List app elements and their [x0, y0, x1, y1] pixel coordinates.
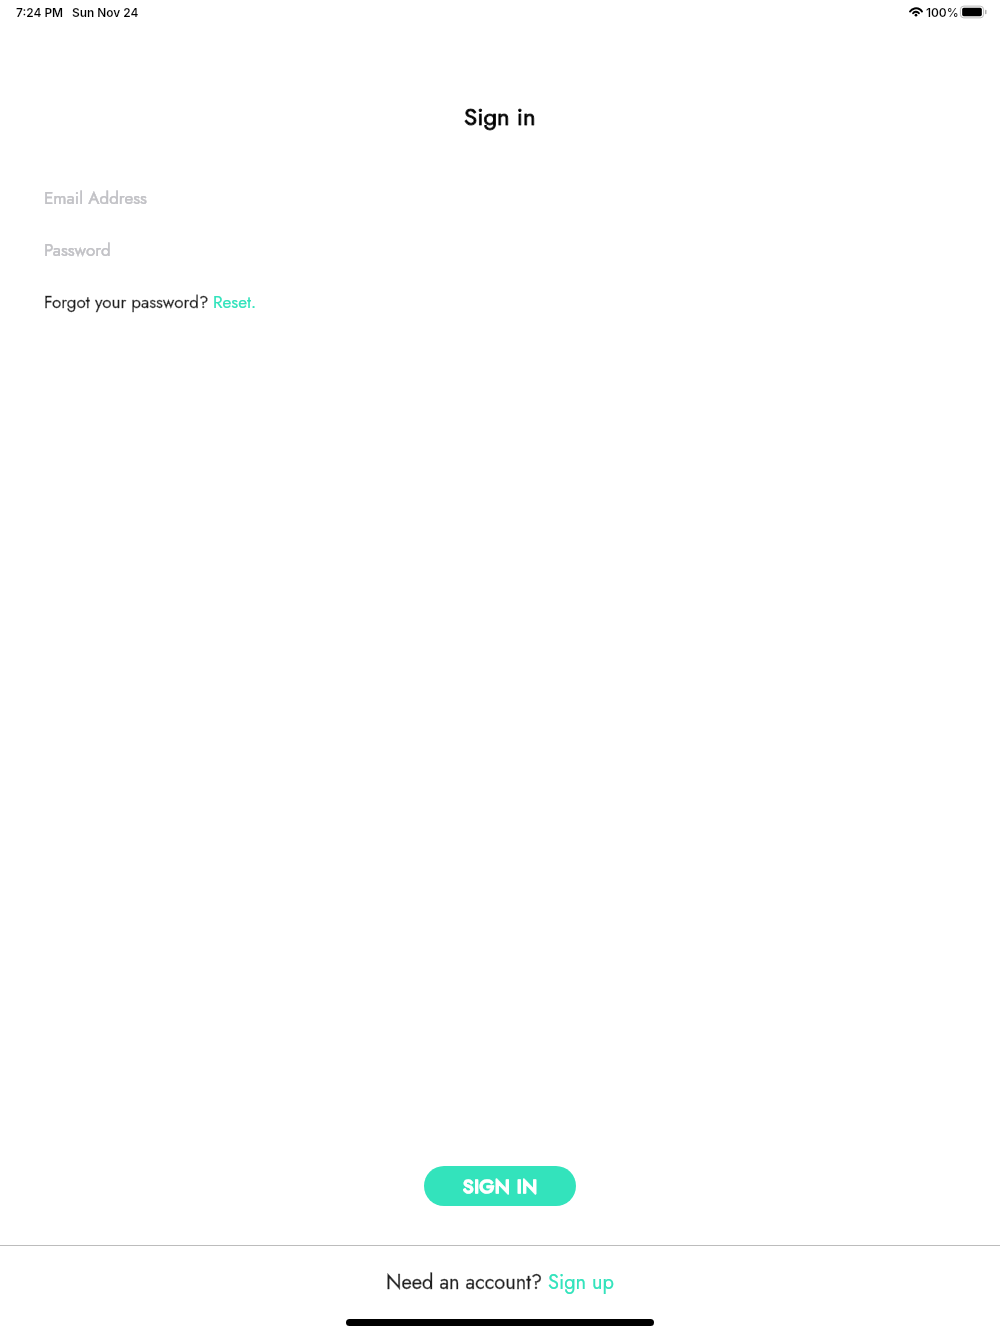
- button[interactable]: Password: [0, 227, 1000, 273]
- other: Wi-Fi: [909, 6, 923, 17]
- staticText: SIGN IN: [463, 1173, 538, 1200]
- button[interactable]: Email Address: [0, 175, 1000, 221]
- staticText: Need an account?: [386, 1268, 543, 1297]
- staticText: Need an account?: [386, 1268, 543, 1297]
- staticText: Forgot your password?: [44, 290, 209, 315]
- button[interactable]: Reset.: [213, 290, 257, 315]
- staticText: Sun Nov 24: [72, 5, 139, 19]
- staticText: Forgot your password?: [44, 290, 209, 315]
- staticText: Sign in: [464, 99, 536, 134]
- staticText: Sign in: [464, 99, 536, 134]
- staticText: 100%: [926, 5, 959, 19]
- staticText: Password: [44, 238, 111, 263]
- staticText: SIGN IN: [463, 1173, 538, 1200]
- button[interactable]: SIGN IN: [424, 1166, 576, 1206]
- staticText: 7:24 PM: [16, 5, 64, 19]
- staticText: Email Address: [44, 186, 147, 211]
- other: Battery 100 percent: [960, 5, 986, 19]
- button[interactable]: Sign up: [548, 1268, 614, 1297]
- staticText: Email Address: [44, 186, 147, 211]
- staticText: Password: [44, 238, 111, 263]
